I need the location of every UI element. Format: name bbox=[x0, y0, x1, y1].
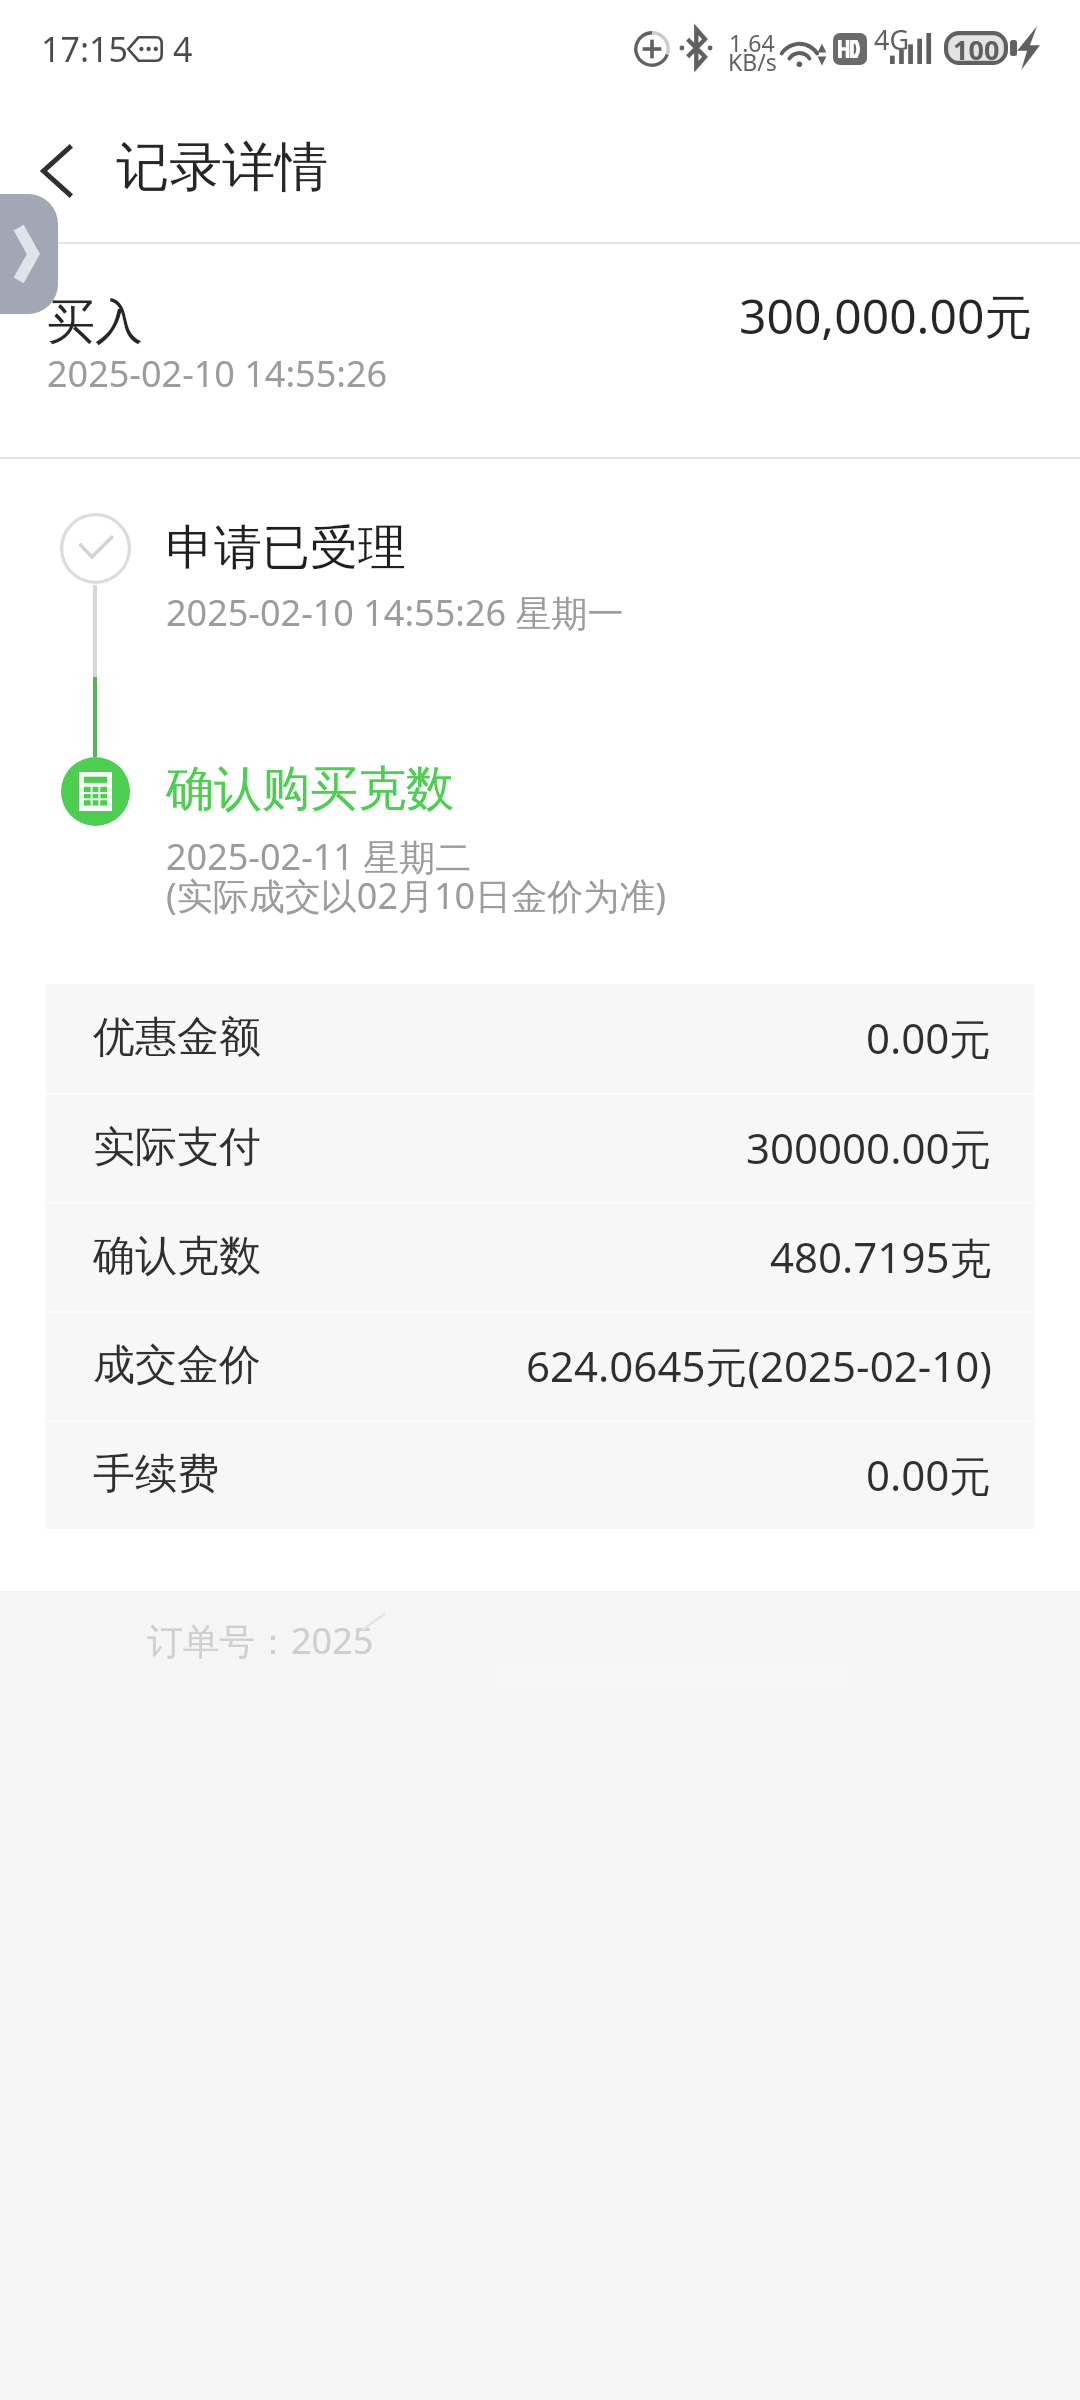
staticText: 确认购买克数 bbox=[166, 759, 454, 819]
staticText: 480.7195克 bbox=[770, 1228, 992, 1285]
staticText: 17:15 bbox=[41, 26, 128, 72]
staticText: 成交金价 bbox=[93, 1339, 261, 1392]
staticText: KB/s bbox=[728, 46, 777, 77]
staticText: 买入 bbox=[47, 292, 143, 352]
button[interactable]: Back bbox=[0, 96, 112, 246]
staticText: 记录详情 bbox=[116, 134, 328, 201]
button[interactable]: 确认克数 bbox=[45, 1204, 1035, 1311]
staticText: 2025-02-10 14:55:26 bbox=[47, 349, 388, 398]
staticText: 100 bbox=[953, 31, 1000, 65]
staticText: 实际支付 bbox=[93, 1121, 261, 1174]
staticText: 2025-02-10 14:55:26 星期一 bbox=[166, 588, 624, 637]
staticText: 手续费 bbox=[93, 1448, 219, 1501]
staticText: 4 bbox=[173, 26, 193, 72]
staticText: 0.00元 bbox=[866, 1009, 992, 1066]
button[interactable]: 手续费 bbox=[45, 1422, 1035, 1529]
staticText: 300,000.00元 bbox=[739, 283, 1033, 349]
staticText: 确认克数 bbox=[93, 1230, 261, 1283]
staticText: 624.0645元(2025-02-10) bbox=[526, 1337, 992, 1394]
staticText: 4G bbox=[874, 21, 910, 58]
button[interactable]: Back gesture handle bbox=[0, 194, 58, 314]
button[interactable]: 优惠金额 bbox=[45, 984, 1035, 1093]
staticText: 优惠金额 bbox=[93, 1011, 261, 1064]
staticText: 0.00元 bbox=[866, 1446, 992, 1503]
staticText: 1.64 bbox=[729, 27, 775, 58]
staticText: 300000.00元 bbox=[746, 1119, 992, 1176]
button[interactable]: 实际支付 bbox=[45, 1095, 1035, 1202]
staticText: 2025-02-11 星期二 (实际成交以02月10日金价为准) bbox=[166, 832, 666, 920]
staticText: 订单号：2025 bbox=[147, 1616, 374, 1665]
button[interactable]: 成交金价 bbox=[45, 1313, 1035, 1420]
staticText: 申请已受理 bbox=[166, 518, 406, 578]
